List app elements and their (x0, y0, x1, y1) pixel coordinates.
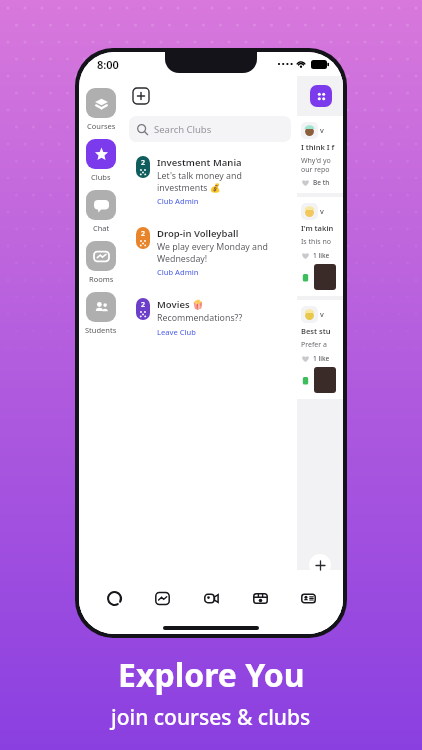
staticText: Explore You (118, 653, 305, 697)
button[interactable]: Apps (310, 85, 332, 107)
staticText: Best stu (301, 326, 331, 336)
staticText: I think I f (301, 142, 335, 152)
staticText: Movies 🍿 (157, 298, 204, 311)
button[interactable]: Club Admin (157, 196, 199, 206)
staticText: Search Clubs (154, 123, 212, 136)
button[interactable]: V (297, 300, 343, 399)
staticText: Is this no (301, 237, 331, 247)
button[interactable]: Courses (86, 84, 116, 135)
staticText: Be th (313, 178, 330, 187)
staticText: Recommendations?? (157, 312, 243, 324)
staticText: Clubs (91, 172, 111, 182)
staticText: Courses (87, 121, 116, 131)
staticText: 2 (141, 300, 146, 310)
staticText: Chat (93, 223, 110, 233)
button[interactable]: Leave Club (157, 327, 196, 337)
staticText: 8:00 (97, 57, 119, 72)
button[interactable]: Rooms (86, 237, 116, 288)
button[interactable]: 2 (129, 220, 291, 284)
button[interactable]: Clubs (86, 135, 116, 186)
staticText: V (320, 311, 324, 319)
staticText: V (320, 127, 324, 135)
staticText: Students (85, 325, 117, 335)
staticText: 2 (141, 158, 146, 168)
staticText: Let's talk money and investments 💰 (157, 170, 242, 193)
staticText: Drop-in Volleyball (157, 227, 239, 240)
button[interactable]: Search Clubs (129, 116, 291, 142)
button[interactable]: Video (197, 584, 225, 612)
button[interactable]: Club Admin (157, 267, 199, 277)
button[interactable]: Profile (294, 584, 322, 612)
button[interactable]: Students (85, 288, 117, 339)
button[interactable]: New (309, 554, 331, 576)
staticText: Prefer a (301, 340, 327, 350)
staticText: V (320, 208, 324, 216)
button[interactable]: 2 (129, 149, 291, 213)
button[interactable]: 2 (129, 291, 291, 344)
staticText: Rooms (89, 274, 114, 284)
staticText: I'm takin (301, 223, 334, 233)
staticText: join courses & clubs (111, 703, 311, 732)
staticText: We play every Monday and Wednesday! (157, 241, 268, 264)
staticText: Why'd yo our repo (301, 156, 331, 174)
staticText: 2 (141, 229, 146, 239)
button[interactable]: Classes (246, 584, 274, 612)
button[interactable]: V (297, 116, 343, 193)
staticText: 1 like (313, 354, 330, 363)
button[interactable]: Chat (86, 186, 116, 237)
staticText: 1 like (313, 251, 330, 260)
staticText: Investment Mania (157, 156, 242, 169)
button[interactable]: V (297, 197, 343, 296)
button[interactable]: Add (133, 88, 149, 104)
button[interactable]: Activity (148, 584, 176, 612)
button[interactable]: Home (100, 584, 128, 612)
